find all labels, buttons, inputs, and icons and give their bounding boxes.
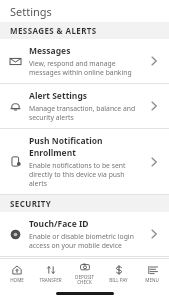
other: Touch Face ID xyxy=(147,224,161,244)
staticText: TRANSFER xyxy=(39,277,62,283)
other: Alert Settings xyxy=(147,96,161,116)
staticText: Push Notification Enrollment xyxy=(29,135,143,159)
staticText: DEPOSIT CHECK xyxy=(75,274,94,286)
other: Messages xyxy=(147,51,161,71)
button[interactable]: HOME xyxy=(0,259,33,287)
staticText: Messages xyxy=(29,45,71,57)
staticText: Touch/Face ID xyxy=(29,218,89,230)
staticText: Manage transaction, balance and security… xyxy=(29,104,143,122)
staticText: MESSAGES & ALERTS xyxy=(10,25,97,36)
staticText: View, respond and manage messages within… xyxy=(29,59,143,77)
staticText: SECURITY xyxy=(10,198,52,209)
staticText: Settings xyxy=(10,4,52,19)
staticText: BILL PAY xyxy=(109,277,128,283)
staticText: Enable or disable biometric login access… xyxy=(29,232,143,250)
button[interactable]: TRANSFER xyxy=(33,259,67,287)
button[interactable]: DEPOSIT CHECK xyxy=(67,259,101,287)
staticText: Enable notifications to be sent directly… xyxy=(29,161,143,188)
staticText: MENU xyxy=(145,277,159,283)
staticText: Alert Settings xyxy=(29,90,88,102)
staticText: HOME xyxy=(10,277,24,283)
button[interactable]: BILL PAY xyxy=(101,259,135,287)
button[interactable]: Messages xyxy=(0,39,169,83)
button[interactable]: Touch/Face ID xyxy=(0,212,169,256)
button[interactable]: Push Notification Enrollment xyxy=(0,129,169,194)
button[interactable]: MENU xyxy=(135,259,169,287)
other: Push Notification Enrollment xyxy=(147,152,161,172)
button[interactable]: Alert Settings xyxy=(0,84,169,128)
